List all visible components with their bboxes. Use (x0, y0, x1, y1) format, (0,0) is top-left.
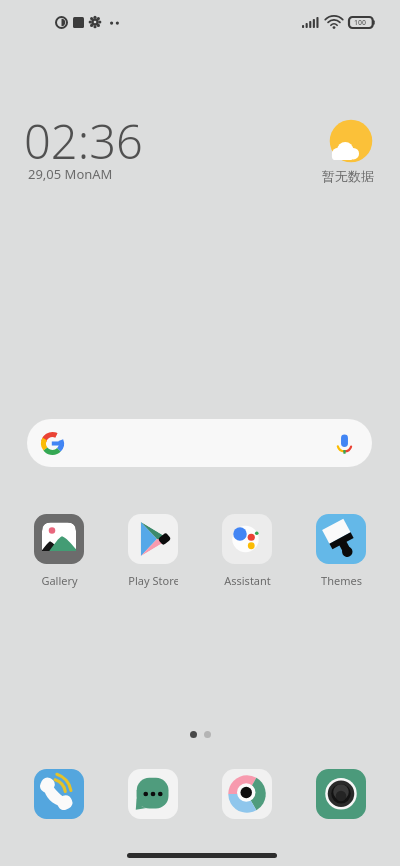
staticText: Assistant (224, 573, 271, 588)
button[interactable]: Phone (34, 769, 84, 819)
button[interactable]: Weather (308, 112, 396, 192)
button[interactable]: Themes (316, 514, 366, 594)
staticText: Themes (321, 573, 362, 588)
button[interactable]: Gallery (34, 514, 84, 594)
staticText: 100 (354, 18, 367, 28)
staticText: Play Store (128, 573, 178, 588)
staticText: Gallery (41, 573, 78, 588)
staticText: 29,05 MonAM (28, 165, 113, 183)
staticText: 暂无数据 (322, 168, 374, 184)
button[interactable]: Play Store (128, 514, 178, 594)
button[interactable]: Messages (128, 769, 178, 819)
button[interactable]: Assistant (222, 514, 272, 594)
button[interactable] (27, 419, 372, 467)
staticText: 02:36 (24, 109, 143, 173)
button[interactable]: Camera (316, 769, 366, 819)
button[interactable]: Chrome (222, 769, 272, 819)
